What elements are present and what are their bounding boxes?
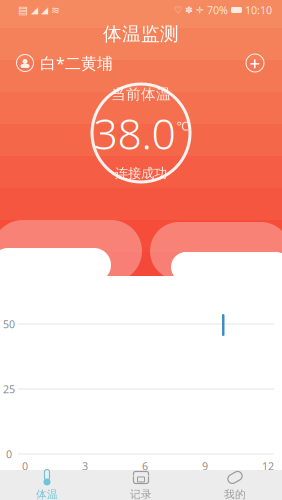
button[interactable]: 记录 bbox=[94, 470, 188, 500]
staticText: 38.0 bbox=[93, 104, 175, 161]
staticText: ♡ bbox=[174, 5, 182, 15]
staticText: ◢ bbox=[41, 5, 48, 15]
staticText: 白*二黄埔 bbox=[40, 52, 113, 74]
staticText: 9 bbox=[202, 459, 208, 473]
staticText: 25 bbox=[3, 382, 15, 396]
staticText: 体温 bbox=[36, 488, 58, 500]
staticText: 记录 bbox=[130, 488, 152, 500]
staticText: ◢ bbox=[31, 5, 38, 15]
staticText: 连接成功 bbox=[115, 165, 167, 181]
staticText: 10:10 bbox=[245, 3, 272, 17]
staticText: 6 bbox=[142, 459, 148, 473]
staticText: ≋ bbox=[51, 4, 60, 16]
staticText: 我的 bbox=[224, 488, 246, 500]
staticText: 50 bbox=[3, 317, 15, 331]
staticText: 0 bbox=[22, 459, 28, 473]
staticText: ✽ bbox=[185, 5, 193, 15]
button[interactable]: 体温 bbox=[0, 470, 94, 500]
staticText: 70% bbox=[207, 3, 228, 17]
staticText: ▤ bbox=[18, 4, 28, 16]
staticText: 3 bbox=[82, 459, 88, 473]
button[interactable]: Add device bbox=[242, 50, 282, 76]
staticText: 12 bbox=[262, 459, 274, 473]
staticText: 体温监测 bbox=[103, 22, 179, 45]
staticText: 0 bbox=[6, 447, 12, 461]
staticText: ℃ bbox=[176, 118, 188, 134]
button[interactable]: 白*二黄埔 bbox=[0, 48, 113, 78]
staticText: ✛ bbox=[196, 5, 204, 15]
button[interactable]: 我的 bbox=[188, 470, 282, 500]
staticText: 当前体温 bbox=[111, 85, 171, 103]
staticText: + bbox=[249, 51, 260, 75]
